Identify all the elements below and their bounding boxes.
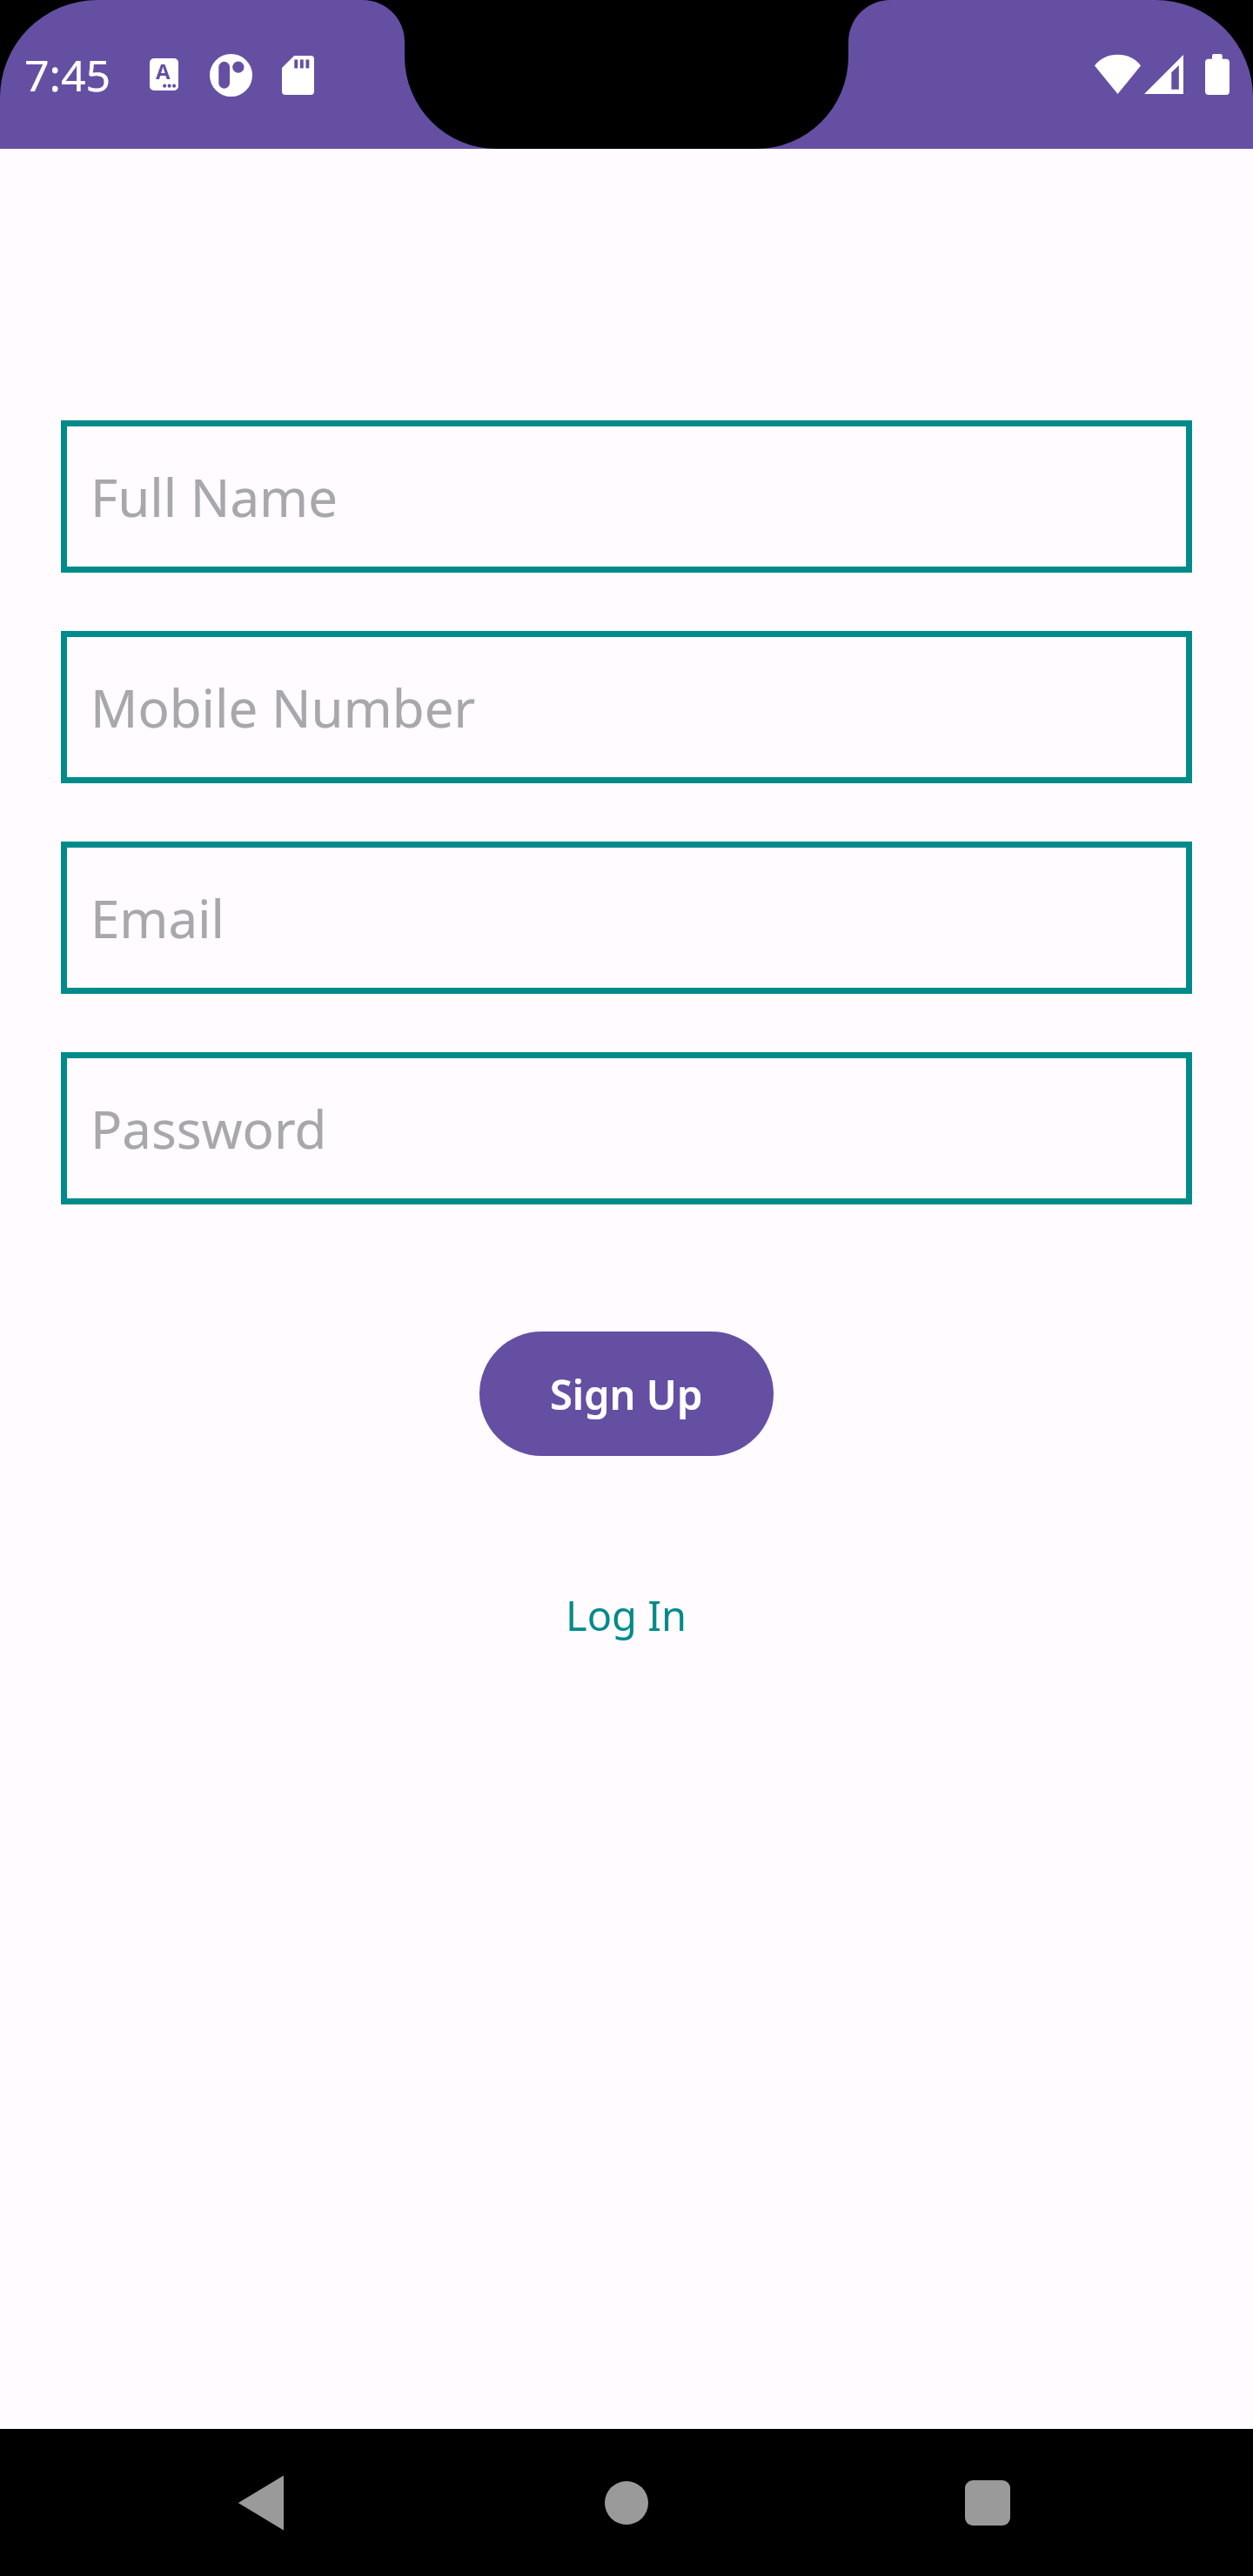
button[interactable]: Password <box>61 1052 1192 1204</box>
button[interactable]: Sign Up <box>479 1332 774 1456</box>
button[interactable]: Back <box>188 2429 336 2576</box>
staticText: Sign Up <box>550 1366 703 1422</box>
staticText: 7:45 <box>24 45 111 104</box>
button[interactable]: Full Name <box>61 420 1192 573</box>
staticText: Mobile Number <box>90 672 476 743</box>
staticText: A <box>156 58 171 85</box>
button[interactable]: Home <box>553 2429 700 2576</box>
staticText: Full Name <box>90 461 338 533</box>
staticText: Log In <box>566 1587 687 1643</box>
button[interactable]: Log In <box>543 1579 710 1652</box>
staticText: Email <box>90 882 225 954</box>
staticText: Password <box>90 1093 327 1164</box>
button[interactable]: Mobile Number <box>61 631 1192 783</box>
button[interactable]: Email <box>61 842 1192 994</box>
button[interactable]: Recent apps <box>914 2429 1062 2576</box>
